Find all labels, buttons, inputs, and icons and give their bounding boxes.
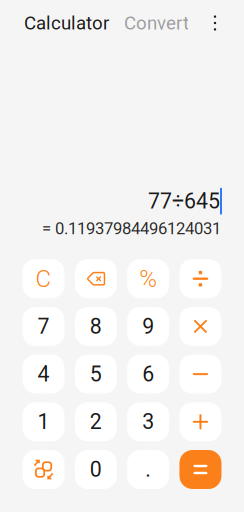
staticText: . <box>145 457 151 482</box>
button[interactable]: Minus <box>179 355 221 394</box>
staticText: 5 <box>90 362 102 387</box>
button[interactable]: Equals <box>179 450 221 489</box>
button[interactable]: Clear <box>22 259 64 298</box>
button[interactable]: Divide <box>179 259 221 298</box>
staticText: 7 <box>37 314 49 339</box>
button[interactable]: 1 <box>22 402 64 441</box>
button[interactable]: 8 <box>75 307 117 346</box>
button[interactable]: 9 <box>127 307 169 346</box>
staticText: Calculator <box>24 12 109 34</box>
button[interactable]: 4 <box>22 355 64 394</box>
staticText: 77÷645 <box>148 189 220 214</box>
button[interactable]: Calculator <box>24 10 110 36</box>
staticText: 6 <box>142 362 154 387</box>
button[interactable]: Percent <box>127 259 169 298</box>
button[interactable]: More options <box>204 10 226 36</box>
staticText: = 0.11937984496124031 <box>42 219 221 238</box>
button[interactable]: Convert units <box>22 450 64 489</box>
staticText: C <box>35 265 51 293</box>
staticText: Converter <box>124 12 205 34</box>
staticText: 0 <box>90 457 102 482</box>
button[interactable]: 0 <box>75 450 117 489</box>
button[interactable]: 3 <box>127 402 169 441</box>
staticText: 2 <box>90 409 102 434</box>
button[interactable]: 7 <box>22 307 64 346</box>
button[interactable]: Multiply <box>179 307 221 346</box>
staticText: 3 <box>142 409 154 434</box>
button[interactable]: Plus <box>179 402 221 441</box>
button[interactable]: Backspace <box>75 259 117 298</box>
button[interactable]: 6 <box>127 355 169 394</box>
button[interactable]: Converter <box>124 10 188 36</box>
button[interactable]: . <box>127 450 169 489</box>
staticText: % <box>139 265 157 293</box>
staticText: 8 <box>90 314 102 339</box>
staticText: 1 <box>37 409 49 434</box>
button[interactable]: 5 <box>75 355 117 394</box>
staticText: 9 <box>142 314 154 339</box>
button[interactable]: 2 <box>75 402 117 441</box>
staticText: 4 <box>37 362 49 387</box>
